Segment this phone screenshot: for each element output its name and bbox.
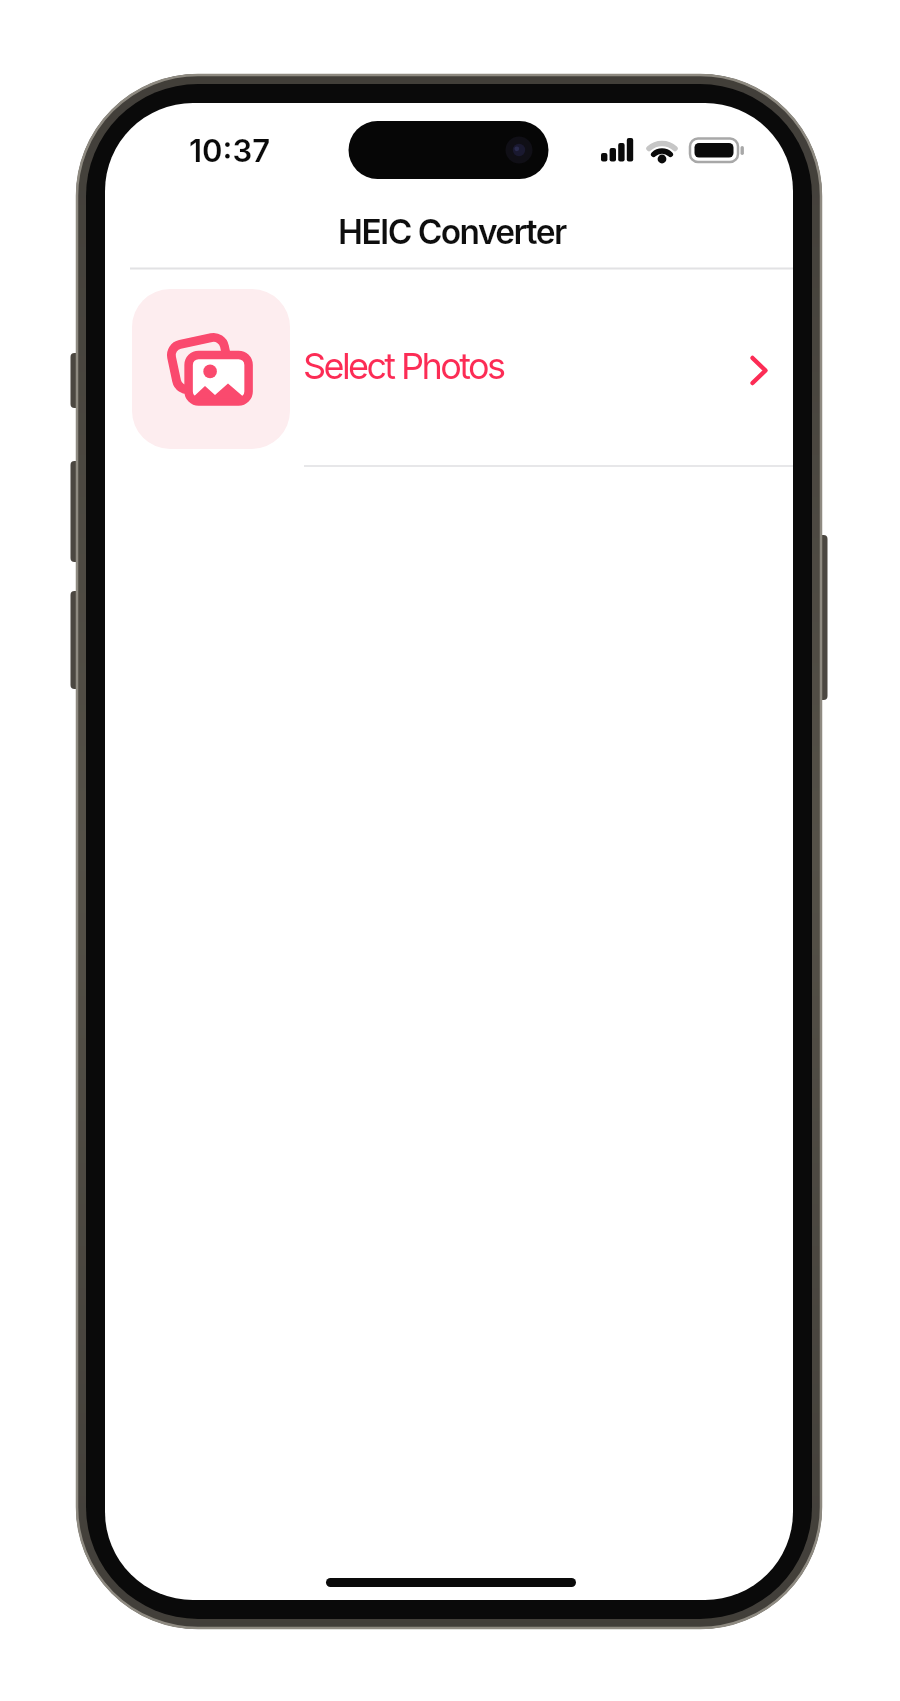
- staticText: Select Photos: [303, 344, 504, 388]
- staticText: 10:37: [189, 132, 271, 170]
- button[interactable]: Select Photos: [130, 289, 793, 449]
- staticText: HEIC Converter: [338, 212, 566, 253]
